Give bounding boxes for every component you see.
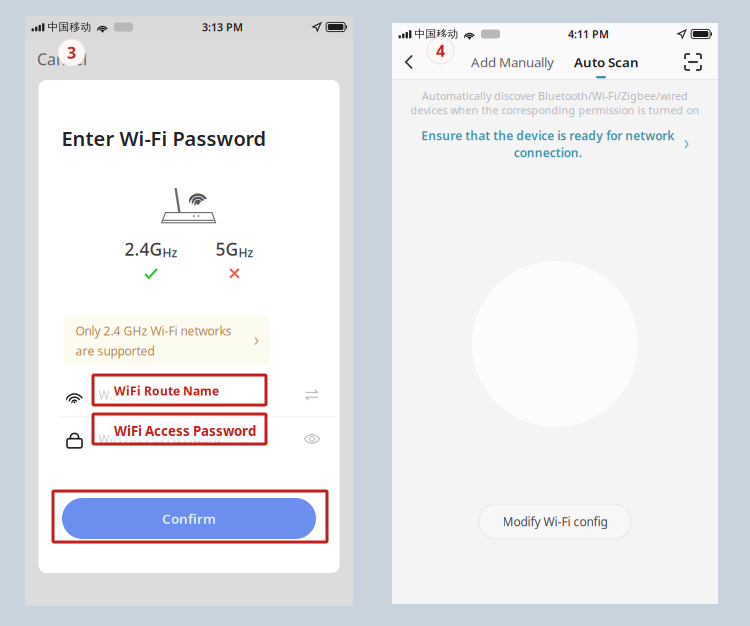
button[interactable]: Cancel <box>25 38 353 80</box>
staticText: Ensure that the device is ready for netw… <box>421 128 674 144</box>
staticText: 3 <box>67 42 76 63</box>
button[interactable]: Modify Wi-Fi config <box>479 504 631 539</box>
staticText: Modify Wi-Fi config <box>502 513 607 529</box>
staticText: are supported <box>75 343 154 359</box>
staticText: Enter Wi-Fi Password <box>61 125 266 152</box>
staticText: Auto Scan <box>574 53 639 71</box>
button[interactable]: WiFi Route Name <box>38 373 339 416</box>
button[interactable]: Auto Scan <box>568 45 645 79</box>
staticText: Cancel <box>37 48 87 70</box>
button[interactable]: Ensure that the device is ready for netw… <box>405 124 705 164</box>
staticText: Hz <box>238 245 253 260</box>
staticText: WiFi Access Password <box>98 431 220 447</box>
staticText: 3:13 PM <box>202 20 243 34</box>
staticText: 2.4G <box>124 238 162 261</box>
button[interactable]: WiFi Access Password <box>38 417 339 460</box>
staticText: WiFi Route Name <box>98 387 193 403</box>
staticText: Only 2.4 GHz Wi-Fi networks <box>75 323 231 339</box>
button[interactable]: Add Manually <box>465 45 560 79</box>
button[interactable]: Back <box>396 45 422 79</box>
staticText: 中国移动 <box>47 20 91 33</box>
staticText: Add Manually <box>471 53 554 71</box>
staticText: WiFi Route Name <box>114 383 219 399</box>
staticText: 4 <box>436 40 445 61</box>
staticText: WiFi Access Password <box>114 422 256 440</box>
staticText: devices when the corresponding permissio… <box>410 103 699 117</box>
staticText: connection. <box>514 145 582 160</box>
staticText: 5G <box>215 238 238 261</box>
button[interactable]: Only 2.4 GHz Wi-Fi networks <box>63 315 269 366</box>
button[interactable]: Confirm <box>62 498 316 539</box>
staticText: Automatically discover Bluetooth/Wi-Fi/Z… <box>422 89 688 103</box>
staticText: 中国移动 <box>414 27 458 40</box>
staticText: 4:11 PM <box>568 27 609 41</box>
staticText: Confirm <box>162 510 216 527</box>
staticText: Hz <box>162 245 177 260</box>
button[interactable]: Scan QR code <box>680 45 706 79</box>
